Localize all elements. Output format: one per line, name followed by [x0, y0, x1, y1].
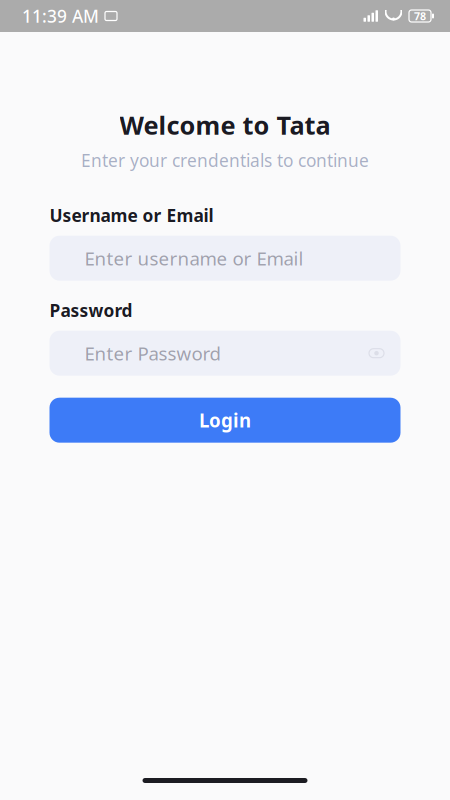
button[interactable]: Enter Password: [49, 331, 400, 376]
staticText: Password: [49, 299, 132, 322]
button[interactable]: Login: [49, 398, 400, 443]
staticText: Enter Password: [84, 341, 220, 366]
staticText: Welcome to Tata: [119, 108, 330, 142]
staticText: Enter username or Email: [84, 246, 303, 271]
staticText: 11:39 AM: [22, 4, 99, 27]
button[interactable]: Enter username or Email: [49, 236, 400, 281]
staticText: Enter your crendentials to continue: [81, 149, 369, 172]
staticText: 78: [414, 9, 426, 23]
staticText: Username or Email: [49, 204, 213, 227]
staticText: Login: [199, 408, 251, 433]
